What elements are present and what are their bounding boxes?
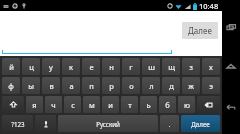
button[interactable]: л <box>142 77 160 94</box>
staticText: д <box>169 81 174 91</box>
button[interactable]: ш <box>142 58 160 75</box>
button[interactable]: х <box>202 58 220 75</box>
button[interactable]: з <box>182 58 200 75</box>
button[interactable]: ы <box>22 77 40 94</box>
button[interactable]: Home <box>222 54 240 80</box>
button[interactable]: а <box>62 77 80 94</box>
button[interactable]: м <box>83 96 100 113</box>
button[interactable]: о <box>122 77 140 94</box>
button[interactable]: й <box>2 58 20 75</box>
button[interactable]: ь <box>140 96 157 113</box>
button[interactable]: Back <box>222 94 240 120</box>
staticText: з <box>189 62 193 72</box>
staticText: Русский <box>96 120 120 128</box>
button[interactable]: и <box>102 96 119 113</box>
button[interactable]: у <box>42 58 60 75</box>
staticText: г <box>129 62 133 72</box>
staticText: ?123 <box>11 120 25 128</box>
staticText: 10:48 <box>199 1 219 11</box>
button[interactable]: ц <box>22 58 40 75</box>
staticText: л <box>149 81 154 91</box>
button[interactable]: б <box>159 96 176 113</box>
button[interactable]: ю <box>178 96 195 113</box>
staticText: ц <box>29 62 34 72</box>
staticText: ф <box>8 81 14 91</box>
button[interactable]: Shift <box>2 96 24 113</box>
button[interactable]: ф <box>2 77 20 94</box>
button[interactable]: г <box>122 58 140 75</box>
button[interactable]: н <box>102 58 120 75</box>
staticText: Далее <box>188 25 212 36</box>
button[interactable]: Далее <box>181 115 220 132</box>
staticText: ы <box>28 81 34 91</box>
staticText: с <box>71 100 75 110</box>
button[interactable]: я <box>26 96 43 113</box>
staticText: ш <box>148 62 155 72</box>
staticText: я <box>32 100 37 110</box>
button[interactable]: Voice input <box>35 115 56 132</box>
staticText: . <box>168 119 171 129</box>
staticText: х <box>209 62 213 72</box>
button[interactable]: э <box>202 77 220 94</box>
staticText: и <box>108 100 113 110</box>
button[interactable]: к <box>62 58 80 75</box>
staticText: р <box>109 81 114 91</box>
button[interactable]: с <box>64 96 81 113</box>
staticText: ж <box>188 81 194 91</box>
staticText: ю <box>184 100 190 110</box>
staticText: п <box>89 81 94 91</box>
button[interactable]: р <box>102 77 120 94</box>
button[interactable]: п <box>82 77 100 94</box>
staticText: а <box>69 81 74 91</box>
button[interactable]: Русский <box>58 115 158 132</box>
staticText: ч <box>51 100 56 110</box>
staticText: э <box>209 81 213 91</box>
staticText: т <box>128 100 132 110</box>
staticText: й <box>9 62 14 72</box>
button[interactable]: ?123 <box>2 115 33 132</box>
staticText: щ <box>168 62 175 72</box>
button[interactable]: Recent apps <box>222 14 240 40</box>
button[interactable]: ж <box>182 77 200 94</box>
staticText: в <box>49 81 54 91</box>
button[interactable]: т <box>121 96 138 113</box>
staticText: к <box>69 62 73 72</box>
button[interactable]: . <box>160 115 179 132</box>
button[interactable]: ч <box>45 96 62 113</box>
button[interactable]: щ <box>162 58 180 75</box>
staticText: н <box>109 62 114 72</box>
button[interactable]: е <box>82 58 100 75</box>
button[interactable]: в <box>42 77 60 94</box>
staticText: о <box>129 81 134 91</box>
staticText: б <box>165 100 170 110</box>
staticText: Далее <box>191 120 210 128</box>
button[interactable]: д <box>162 77 180 94</box>
staticText: ь <box>146 100 151 110</box>
staticText: м <box>89 100 95 110</box>
staticText: у <box>49 62 53 72</box>
button[interactable]: Backspace <box>197 96 220 113</box>
staticText: е <box>89 62 94 72</box>
button[interactable]: Далее <box>182 22 218 39</box>
